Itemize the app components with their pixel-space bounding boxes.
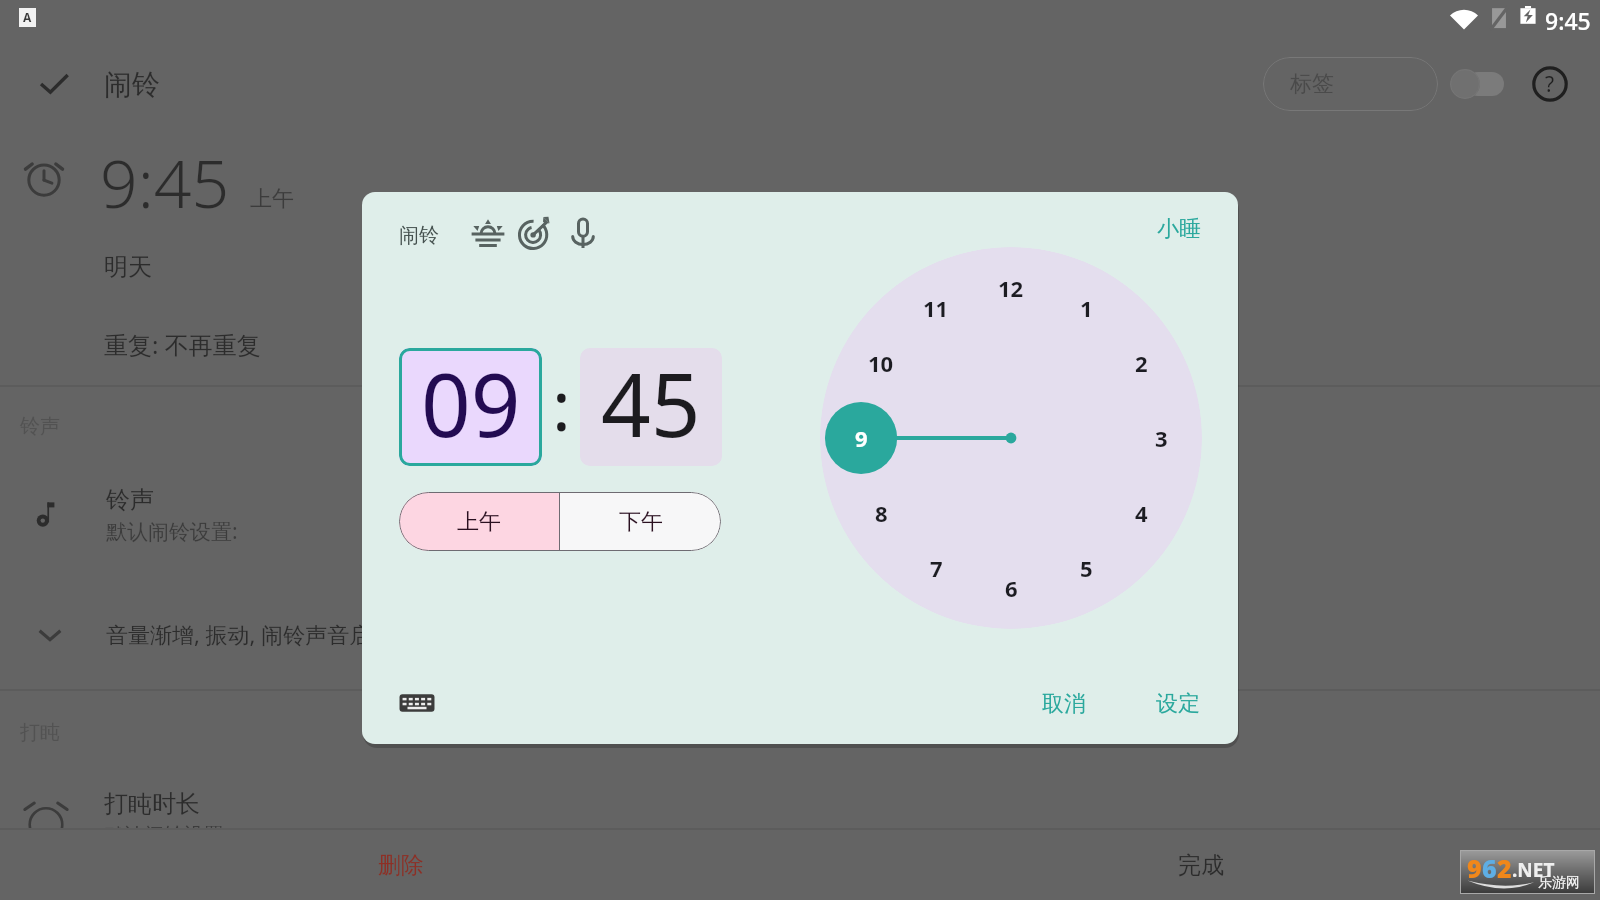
button[interactable]: 标签 <box>1263 57 1438 111</box>
staticText: 设定 <box>1156 690 1200 718</box>
button[interactable]: Alarm enabled <box>36 66 72 102</box>
staticText: 6 <box>1482 851 1497 885</box>
staticText: 打盹时长 <box>104 789 200 819</box>
staticText: : <box>552 356 571 451</box>
button[interactable]: 上午 <box>399 492 559 551</box>
staticText: 默认闹铃设置 <box>104 823 224 829</box>
button[interactable]: 删除 <box>368 843 434 888</box>
staticText: 上午 <box>457 508 501 536</box>
staticText: 11 <box>923 293 949 323</box>
button[interactable]: 09 <box>399 348 542 466</box>
staticText: .NET <box>1512 857 1555 883</box>
staticText: 乐游网 <box>1538 874 1580 892</box>
button[interactable]: Sunrise alarm <box>467 212 509 254</box>
staticText: 2 <box>1497 851 1512 885</box>
staticText: 铃声 <box>20 414 60 439</box>
button[interactable]: 设定 <box>1144 680 1212 728</box>
staticText: 1 <box>1080 293 1093 323</box>
staticText: 45 <box>601 348 701 462</box>
staticText: 标签 <box>1290 70 1334 98</box>
staticText: 删除 <box>378 851 424 880</box>
staticText: 重复: 不再重复 <box>104 328 261 361</box>
button[interactable]: 取消 <box>1030 680 1098 728</box>
staticText: 2 <box>1135 348 1148 378</box>
staticText: 上午 <box>250 185 294 213</box>
button[interactable]: 铃声 <box>0 478 1600 552</box>
button[interactable]: Help <box>1526 60 1574 108</box>
staticText: 闹铃 <box>104 67 160 102</box>
button[interactable]: Clock dial, 9 o'clock selected <box>820 247 1202 629</box>
staticText: 5 <box>1080 553 1093 583</box>
button[interactable]: 完成 <box>1168 843 1234 888</box>
button[interactable]: 打盹时长 <box>0 789 1600 829</box>
staticText: 12 <box>998 273 1024 303</box>
button[interactable]: 音量渐增, 振动, 闹铃声音启 <box>0 606 1600 662</box>
staticText: 09 <box>421 348 521 462</box>
button[interactable]: Voice alarm <box>562 212 604 254</box>
button[interactable]: Goal alarm <box>514 212 556 254</box>
button[interactable]: 小睡 <box>1149 209 1209 249</box>
staticText: 音量渐增, 振动, 闹铃声音启 <box>106 619 372 649</box>
staticText: 7 <box>930 553 943 583</box>
staticText: 9 <box>855 423 868 453</box>
button[interactable]: Toggle alarm <box>1450 66 1504 102</box>
staticText: 9:45 <box>100 137 230 227</box>
staticText: 4 <box>1135 498 1148 528</box>
staticText: 闹铃 <box>399 223 439 248</box>
staticText: ? <box>1545 70 1555 99</box>
staticText: A <box>23 9 32 25</box>
staticText: 打盹 <box>20 720 60 745</box>
staticText: 完成 <box>1178 851 1224 880</box>
button[interactable]: 下午 <box>560 492 721 551</box>
staticText: 默认闹铃设置: <box>106 517 238 546</box>
staticText: 10 <box>868 348 894 378</box>
staticText: 9 <box>1467 851 1482 885</box>
staticText: 8 <box>875 498 888 528</box>
staticText: 9:45 <box>1545 5 1591 36</box>
staticText: 3 <box>1155 423 1168 453</box>
staticText: 铃声 <box>106 485 154 515</box>
staticText: 下午 <box>619 508 663 536</box>
staticText: 取消 <box>1042 690 1086 718</box>
staticText: 小睡 <box>1157 215 1201 243</box>
button[interactable]: 45 <box>580 348 722 466</box>
staticText: 6 <box>1005 573 1018 603</box>
button[interactable]: Switch to keyboard input <box>398 684 436 722</box>
staticText: 明天 <box>104 252 152 282</box>
